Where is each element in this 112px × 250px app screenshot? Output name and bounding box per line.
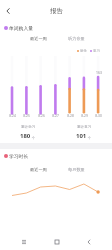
staticText: 个 [31,136,36,140]
button[interactable]: Home [48,233,65,250]
button[interactable]: Recents [15,233,32,250]
staticText: 学习时长 [9,153,29,159]
button[interactable]: 单词购入量 [4,24,33,31]
staticText: 每月数量 [68,167,85,172]
staticText: 8-30 [95,114,102,118]
staticText: 8-25 [23,114,30,118]
staticText: 8-24 [9,114,16,118]
staticText: 8-26 [38,114,45,118]
staticText: 101 [76,132,87,140]
button[interactable]: 每月数量 [68,167,85,172]
staticText: 163 [96,70,102,75]
staticText: 报告 [50,7,63,15]
staticText: 个 [87,136,92,140]
button[interactable]: 最近一周 [30,36,47,41]
button[interactable]: 听力音量 [68,36,85,41]
button[interactable]: Back [80,233,97,250]
staticText: 复习 [93,49,100,53]
staticText: 最近一周 [30,167,47,172]
staticText: 单词购入量 [9,25,33,31]
staticText: 8-27 [52,114,59,118]
staticText: 累计复习 [77,125,92,130]
staticText: 8-29 [81,114,88,118]
button[interactable]: 学习时长 [4,152,29,159]
button[interactable]: 最近一周 [30,167,47,172]
staticText: 最近一周 [30,36,47,41]
staticText: 累计学习 [21,125,36,130]
staticText: 8-28 [67,114,74,118]
staticText: 听力音量 [68,36,85,41]
staticText: 180 [20,132,31,140]
button[interactable]: Back [1,4,15,18]
staticText: 新学 [80,49,87,53]
